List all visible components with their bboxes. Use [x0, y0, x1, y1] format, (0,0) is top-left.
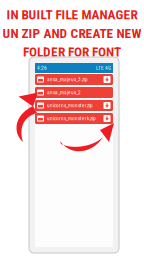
- staticText: ansa_majeux_2: [47, 89, 81, 96]
- button[interactable]: ansa_majeux_3.zip: [35, 74, 113, 85]
- staticText: unicorns_monsterk.zip: [47, 115, 96, 122]
- button[interactable]: ansa_majeux_2: [35, 87, 113, 98]
- staticText: ansa_majeux_3.zip: [47, 76, 88, 83]
- button[interactable]: unicorns_monsterk.zip: [35, 113, 113, 124]
- button[interactable]: unicorns_monster.zip: [35, 100, 113, 111]
- staticText: FOLDER FOR FONT: [23, 44, 121, 60]
- staticText: IN BUILT FILE MANAGER: [6, 7, 137, 23]
- staticText: unicorns_monster.zip: [47, 102, 93, 109]
- staticText: UN ZIP AND CREATE NEW: [2, 26, 141, 41]
- staticText: 4:26: [37, 65, 47, 71]
- staticText: LTE 4G: [96, 65, 111, 71]
